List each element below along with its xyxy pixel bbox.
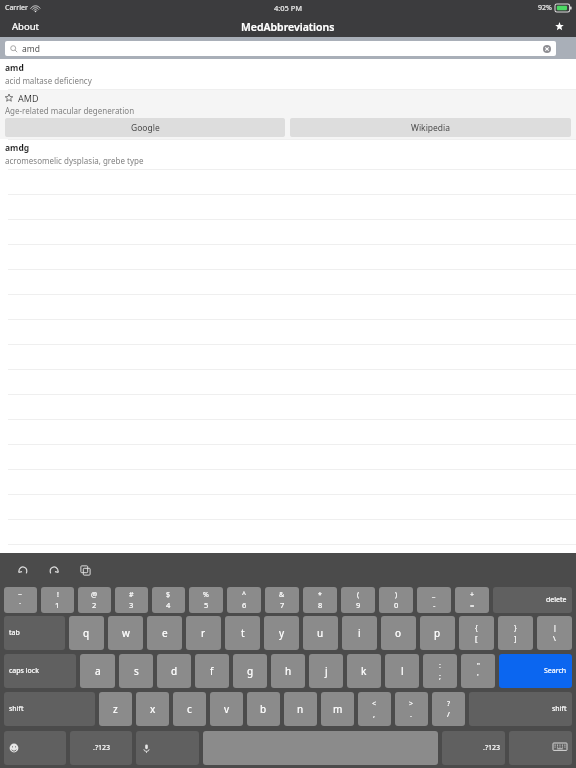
button[interactable]: r <box>186 616 221 650</box>
button[interactable]: amd <box>0 59 576 89</box>
staticText: Google <box>131 122 160 134</box>
button[interactable]: g <box>233 654 267 688</box>
button[interactable]: Paste <box>74 559 96 581</box>
button[interactable]: ( <box>341 587 375 613</box>
button[interactable]: Favorites <box>543 16 576 37</box>
button[interactable]: Emoji <box>4 731 66 765</box>
button[interactable]: + <box>455 587 489 613</box>
button[interactable]: Clear search <box>543 45 551 53</box>
button[interactable]: a <box>80 654 115 688</box>
staticText: . <box>410 709 413 719</box>
button[interactable]: ^ <box>227 587 261 613</box>
button[interactable]: w <box>108 616 143 650</box>
button[interactable]: y <box>264 616 299 650</box>
button[interactable]: t <box>225 616 260 650</box>
button[interactable]: amd <box>5 41 556 56</box>
button[interactable]: ~ <box>4 587 37 613</box>
button[interactable]: v <box>210 692 243 726</box>
button[interactable]: & <box>265 587 299 613</box>
button[interactable]: " <box>461 654 495 688</box>
button[interactable]: * <box>303 587 337 613</box>
button[interactable]: shift <box>4 692 95 726</box>
button[interactable]: ? <box>432 692 465 726</box>
button[interactable]: i <box>342 616 377 650</box>
button[interactable]: Dictation <box>136 731 199 765</box>
staticText: ) <box>395 590 398 600</box>
button[interactable]: } <box>498 616 533 650</box>
button[interactable]: < <box>358 692 391 726</box>
button[interactable]: l <box>385 654 419 688</box>
button[interactable]: > <box>395 692 428 726</box>
staticText: h <box>285 664 292 678</box>
button[interactable]: % <box>189 587 223 613</box>
button[interactable]: u <box>303 616 338 650</box>
button[interactable]: m <box>321 692 354 726</box>
button[interactable]: amdg <box>0 140 576 169</box>
button[interactable]: Undo <box>12 559 34 581</box>
staticText: _ <box>432 590 436 600</box>
staticText: 2 <box>92 600 97 610</box>
button[interactable]: | <box>537 616 572 650</box>
button[interactable]: q <box>69 616 104 650</box>
button[interactable]: f <box>195 654 229 688</box>
button[interactable]: ! <box>41 587 74 613</box>
button[interactable]: Redo <box>43 559 65 581</box>
button[interactable]: @ <box>78 587 111 613</box>
button[interactable]: ) <box>379 587 413 613</box>
button[interactable]: : <box>423 654 457 688</box>
staticText: x <box>150 702 156 716</box>
button[interactable]: c <box>173 692 206 726</box>
button[interactable]: Search <box>499 654 572 688</box>
button[interactable]: .?123 <box>442 731 505 765</box>
button[interactable]: Google <box>5 118 285 137</box>
button[interactable]: tab <box>4 616 65 650</box>
button[interactable]: About <box>0 16 51 37</box>
button[interactable]: x <box>136 692 169 726</box>
button[interactable]: z <box>99 692 132 726</box>
button[interactable]: n <box>284 692 317 726</box>
staticText: ' <box>477 671 479 681</box>
staticText: shift <box>9 704 24 714</box>
button[interactable]: k <box>347 654 381 688</box>
button[interactable]: Hide keyboard <box>509 731 572 765</box>
button[interactable]: caps lock <box>4 654 76 688</box>
button[interactable]: $ <box>152 587 185 613</box>
button[interactable]: s <box>119 654 153 688</box>
staticText: MedAbbreviations <box>241 20 335 34</box>
button[interactable]: e <box>147 616 182 650</box>
button[interactable]: o <box>381 616 416 650</box>
button[interactable]: p <box>420 616 455 650</box>
button[interactable]: d <box>157 654 191 688</box>
button[interactable]: b <box>247 692 280 726</box>
button[interactable]: j <box>309 654 343 688</box>
staticText: i <box>358 626 361 640</box>
button[interactable]: AMD <box>0 90 576 139</box>
button[interactable]: Wikipedia <box>290 118 571 137</box>
button[interactable]: delete <box>493 587 572 613</box>
staticText: acromesomelic dysplasia, grebe type <box>5 155 144 166</box>
button[interactable]: { <box>459 616 494 650</box>
button[interactable]: h <box>271 654 305 688</box>
button[interactable]: shift <box>469 692 572 726</box>
button[interactable]: .?123 <box>70 731 132 765</box>
button[interactable]: # <box>115 587 148 613</box>
button[interactable]: _ <box>417 587 451 613</box>
staticText: 92% <box>538 3 552 13</box>
